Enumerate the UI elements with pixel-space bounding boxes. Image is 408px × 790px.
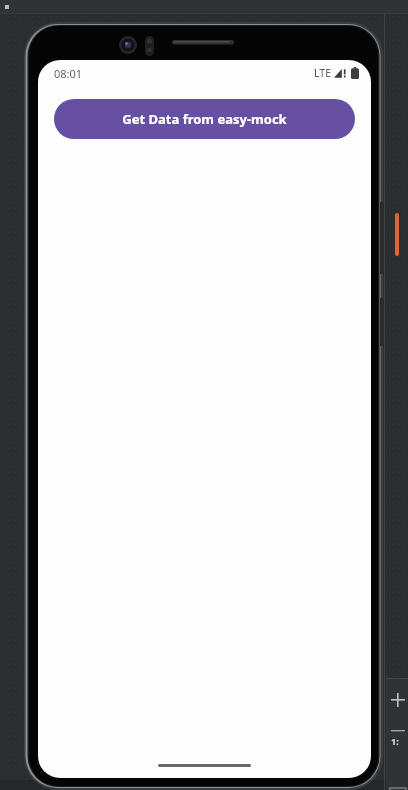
staticText: LTE	[314, 66, 331, 80]
staticText: 1:	[391, 735, 399, 747]
staticText: 08:01	[54, 66, 83, 81]
other: Home gesture	[158, 764, 251, 767]
staticText: Get Data from easy-mock	[122, 110, 287, 128]
button[interactable]: Get Data from easy-mock	[54, 99, 355, 139]
